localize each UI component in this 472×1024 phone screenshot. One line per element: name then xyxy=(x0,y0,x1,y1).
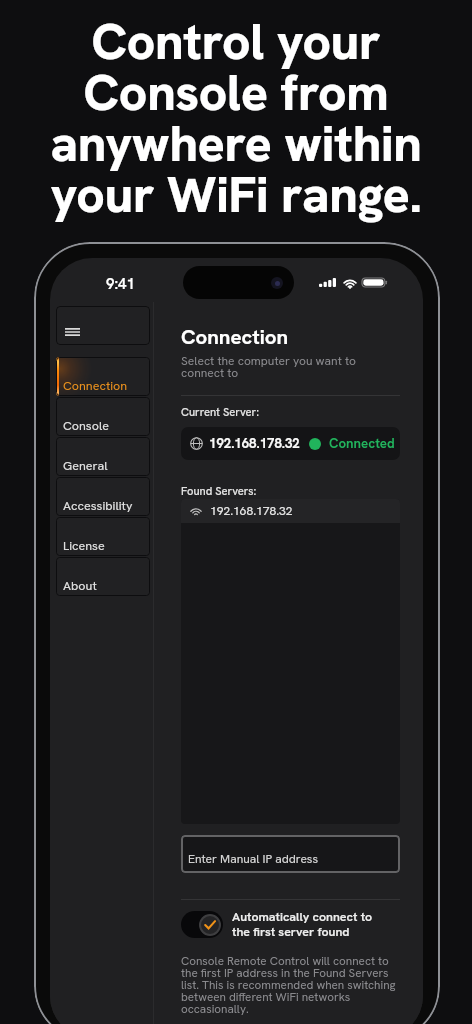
staticText: Current Server: xyxy=(181,405,259,420)
button[interactable]: 192.168.178.32 xyxy=(181,427,400,460)
staticText: Console Remote Control will connect to t… xyxy=(181,953,396,1017)
staticText: Connection xyxy=(181,323,289,350)
button[interactable]: Automatically connect toggle xyxy=(181,911,223,938)
staticText: 192.168.178.32 xyxy=(210,503,293,519)
button[interactable]: Console xyxy=(56,397,150,436)
button[interactable]: Connection xyxy=(56,357,150,396)
staticText: 192.168.178.32 xyxy=(209,435,300,452)
staticText: Found Servers: xyxy=(181,484,257,499)
button[interactable]: Enter Manual IP address xyxy=(181,835,400,873)
staticText: Connected xyxy=(329,435,395,452)
button[interactable]: Menu xyxy=(56,306,150,345)
staticText: Control your Console from anywhere withi… xyxy=(50,9,422,228)
button[interactable]: About xyxy=(56,557,150,596)
staticText: General xyxy=(63,457,108,473)
staticText: 9:41 xyxy=(106,274,135,294)
staticText: Automatically connect to the first serve… xyxy=(232,909,373,940)
staticText: Console xyxy=(63,417,110,433)
button[interactable]: General xyxy=(56,437,150,476)
staticText: License xyxy=(63,537,105,553)
staticText: Connection xyxy=(63,377,128,393)
staticText: Enter Manual IP address xyxy=(188,851,319,867)
staticText: About xyxy=(63,577,97,593)
button[interactable]: Accessibility xyxy=(56,477,150,516)
staticText: Accessibility xyxy=(63,497,133,513)
button[interactable]: 192.168.178.32 xyxy=(181,499,400,523)
staticText: Select the computer you want to connect … xyxy=(181,353,356,381)
button[interactable]: License xyxy=(56,517,150,556)
